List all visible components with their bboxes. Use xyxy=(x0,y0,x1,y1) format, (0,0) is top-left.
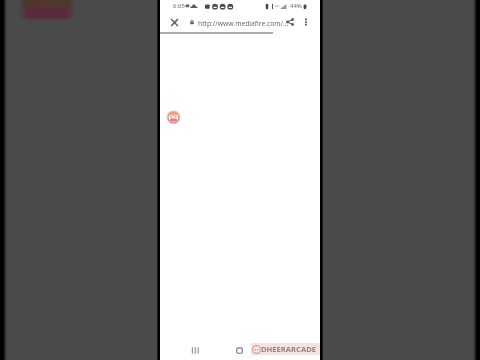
button[interactable]: More options xyxy=(297,13,315,31)
staticText: 6:05 xyxy=(173,2,185,10)
staticText: DHEERARCADE xyxy=(261,344,317,354)
staticText: 44% xyxy=(290,2,302,10)
button[interactable]: Home xyxy=(231,342,247,358)
button[interactable]: Close xyxy=(164,12,184,32)
staticText: http://www.mediafire.com/... xyxy=(198,19,289,28)
button[interactable]: Recent apps xyxy=(186,342,202,358)
button[interactable]: Share xyxy=(281,13,299,31)
